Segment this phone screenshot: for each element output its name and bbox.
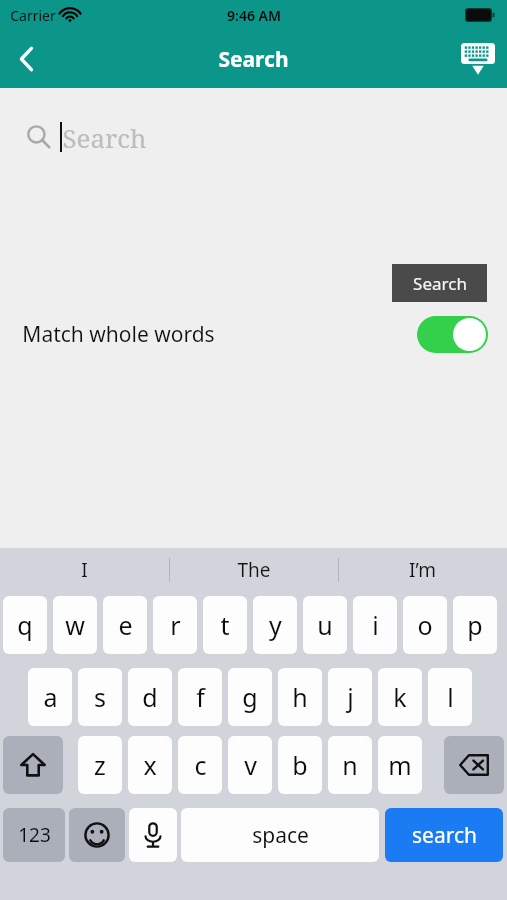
button[interactable]: m <box>378 736 422 794</box>
button[interactable]: s <box>78 668 122 726</box>
button[interactable]: z <box>78 736 122 794</box>
staticText: d <box>142 680 158 714</box>
button[interactable]: I’m <box>338 548 507 592</box>
staticText: t <box>220 608 230 642</box>
staticText: q <box>17 608 33 642</box>
button[interactable]: g <box>228 668 272 726</box>
button[interactable]: n <box>328 736 372 794</box>
button[interactable]: p <box>453 596 497 654</box>
button[interactable]: c <box>178 736 222 794</box>
staticText: z <box>94 748 106 782</box>
button[interactable]: j <box>328 668 372 726</box>
button[interactable]: t <box>203 596 247 654</box>
staticText: i <box>372 608 379 642</box>
button[interactable]: I <box>0 548 169 592</box>
staticText: v <box>244 748 257 782</box>
staticText: f <box>196 680 205 714</box>
button[interactable]: The <box>169 548 338 592</box>
button[interactable]: w <box>53 596 97 654</box>
button[interactable]: Search <box>392 264 487 302</box>
button[interactable]: Shift <box>3 736 63 794</box>
button[interactable]: Match whole words toggle <box>417 316 488 353</box>
staticText: Search <box>218 45 289 74</box>
button[interactable]: r <box>153 596 197 654</box>
staticText: s <box>94 680 106 714</box>
staticText: n <box>342 748 358 782</box>
button[interactable]: x <box>128 736 172 794</box>
button[interactable]: Search <box>26 108 481 166</box>
button[interactable]: d <box>128 668 172 726</box>
staticText: y <box>269 608 282 642</box>
staticText: e <box>118 608 133 642</box>
button[interactable]: u <box>303 596 347 654</box>
button[interactable]: a <box>28 668 72 726</box>
staticText: j <box>347 680 354 714</box>
button[interactable]: f <box>178 668 222 726</box>
staticText: I’m <box>409 557 436 583</box>
staticText: search <box>412 821 477 850</box>
staticText: k <box>393 680 407 714</box>
button[interactable]: i <box>353 596 397 654</box>
staticText: w <box>65 608 85 642</box>
staticText: 123 <box>18 822 51 848</box>
button[interactable]: q <box>3 596 47 654</box>
staticText: The <box>237 557 271 583</box>
staticText: u <box>317 608 333 642</box>
button[interactable]: v <box>228 736 272 794</box>
staticText: Search <box>62 120 147 155</box>
staticText: Search <box>413 272 467 295</box>
staticText: l <box>447 680 454 714</box>
button[interactable]: space <box>181 808 379 862</box>
staticText: o <box>417 608 433 642</box>
staticText: m <box>388 748 412 782</box>
staticText: Match whole words <box>22 320 215 349</box>
button[interactable]: b <box>278 736 322 794</box>
button[interactable]: l <box>428 668 472 726</box>
button[interactable]: 123 <box>3 808 65 862</box>
staticText: r <box>170 608 181 642</box>
button[interactable]: Hide keyboard <box>449 30 507 88</box>
staticText: Carrier <box>10 6 56 25</box>
staticText: p <box>467 608 483 642</box>
button[interactable]: y <box>253 596 297 654</box>
button[interactable]: Voice input <box>129 808 177 862</box>
staticText: x <box>143 748 157 782</box>
button[interactable]: search <box>385 808 503 862</box>
staticText: space <box>252 821 309 850</box>
staticText: b <box>292 748 308 782</box>
staticText: 9:46 AM <box>227 6 281 25</box>
staticText: h <box>292 680 308 714</box>
button[interactable]: Emoji <box>69 808 125 862</box>
staticText: g <box>242 680 258 714</box>
button[interactable]: Backspace <box>444 736 504 794</box>
staticText: a <box>43 680 58 714</box>
staticText: I <box>81 557 88 583</box>
button[interactable]: k <box>378 668 422 726</box>
staticText: c <box>194 748 207 782</box>
button[interactable]: Back <box>0 30 54 88</box>
button[interactable]: h <box>278 668 322 726</box>
button[interactable]: o <box>403 596 447 654</box>
button[interactable]: e <box>103 596 147 654</box>
